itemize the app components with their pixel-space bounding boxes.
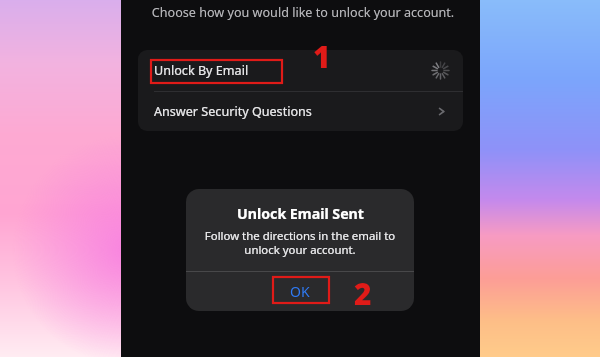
other: Loading bbox=[432, 62, 449, 79]
staticText: Follow the directions in the email to un… bbox=[201, 228, 399, 258]
staticText: 1 bbox=[313, 36, 331, 77]
button[interactable]: Answer Security Questions bbox=[138, 92, 463, 131]
staticText: Unlock Email Sent bbox=[237, 204, 364, 223]
staticText: Choose how you would like to unlock your… bbox=[139, 4, 467, 21]
staticText: OK bbox=[290, 282, 310, 301]
staticText: 2 bbox=[354, 273, 372, 314]
staticText: Answer Security Questions bbox=[154, 103, 312, 120]
staticText: Unlock By Email bbox=[154, 62, 249, 79]
button[interactable]: OK bbox=[186, 272, 414, 311]
button[interactable]: Unlock By Email bbox=[138, 50, 463, 91]
